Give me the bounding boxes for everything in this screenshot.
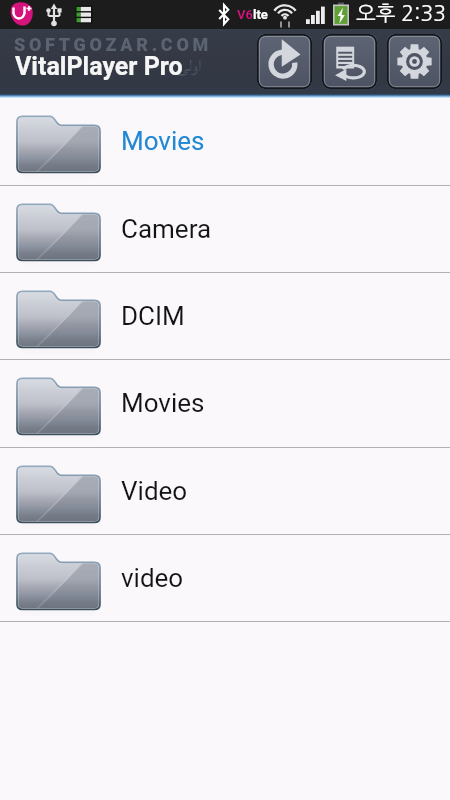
staticText: Camera: [121, 214, 212, 244]
button[interactable]: Camera: [0, 186, 450, 273]
staticText: Movies: [121, 388, 205, 418]
button[interactable]: DCIM: [0, 273, 450, 360]
staticText: lte: [253, 7, 268, 22]
staticText: Video: [121, 476, 188, 506]
staticText: video: [121, 563, 184, 593]
staticText: 오후 2:33: [356, 3, 446, 24]
button[interactable]: video: [0, 535, 450, 622]
staticText: VitalPlayer Pro: [15, 52, 183, 81]
staticText: DCIM: [121, 301, 185, 331]
staticText: SOFTGOZAR.COM: [14, 34, 212, 55]
staticText: Movies: [121, 126, 205, 156]
button[interactable]: Sort list: [322, 34, 377, 89]
staticText: اولی: [177, 50, 202, 82]
button[interactable]: Movies: [0, 98, 450, 186]
button[interactable]: Refresh: [257, 34, 312, 89]
button[interactable]: Video: [0, 448, 450, 535]
staticText: V6: [237, 7, 253, 22]
button[interactable]: Settings: [387, 34, 442, 89]
button[interactable]: Movies: [0, 360, 450, 448]
